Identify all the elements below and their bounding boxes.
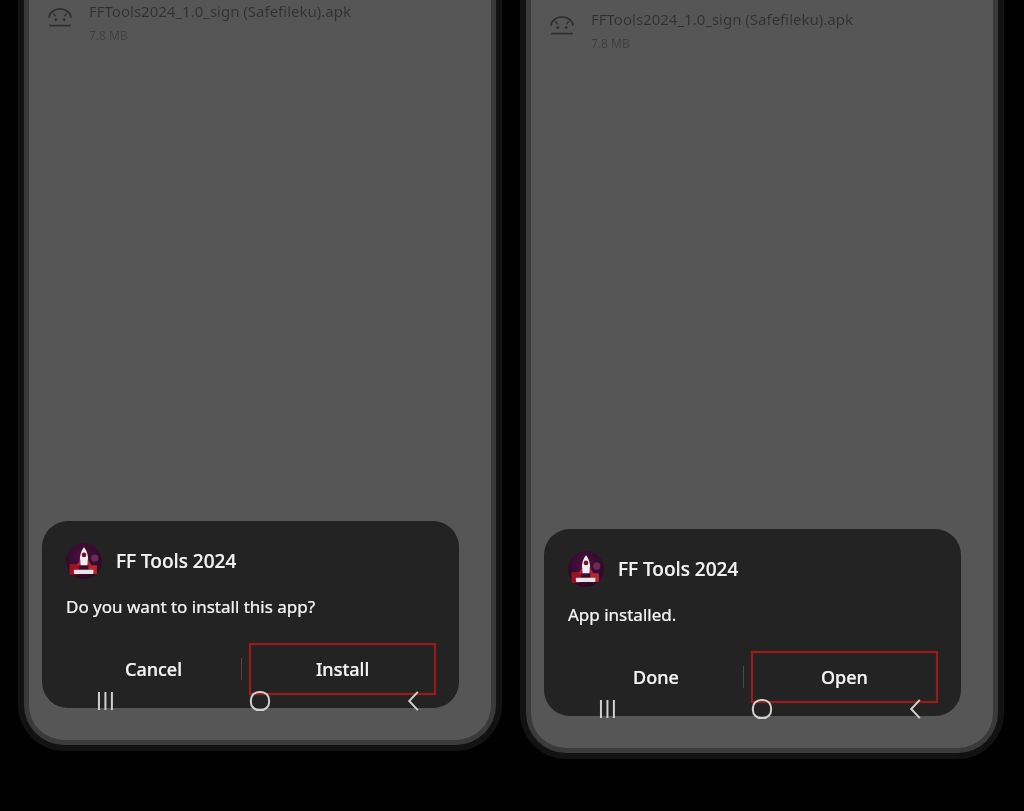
button[interactable]: Recents [531,679,685,739]
button[interactable]: Home [685,679,839,739]
staticText: FFTools2024_1.0_sign (Safefileku).apk [591,9,853,29]
staticText: App installed. [568,603,677,626]
staticText: FF Tools 2024 [618,556,739,582]
staticText: FFTools2024_1.0_sign (Safefileku).apk [89,1,351,21]
button[interactable]: Home [183,671,337,731]
staticText: 7.8 MB [89,27,128,43]
staticText: Cancel [125,657,183,682]
staticText: Done [633,665,679,690]
staticText: 7.8 MB [591,35,630,51]
button[interactable]: Back [337,671,491,731]
staticText: Do you want to install this app? [66,595,316,618]
button[interactable]: Back [839,679,993,739]
button[interactable]: Done [568,654,743,700]
button[interactable]: Open [752,652,937,702]
button[interactable]: Cancel [66,646,241,692]
staticText: FF Tools 2024 [116,548,237,574]
staticText: Open [821,665,868,690]
button[interactable]: Install [250,644,435,694]
staticText: Install [316,657,370,682]
button[interactable]: Recents [29,671,183,731]
